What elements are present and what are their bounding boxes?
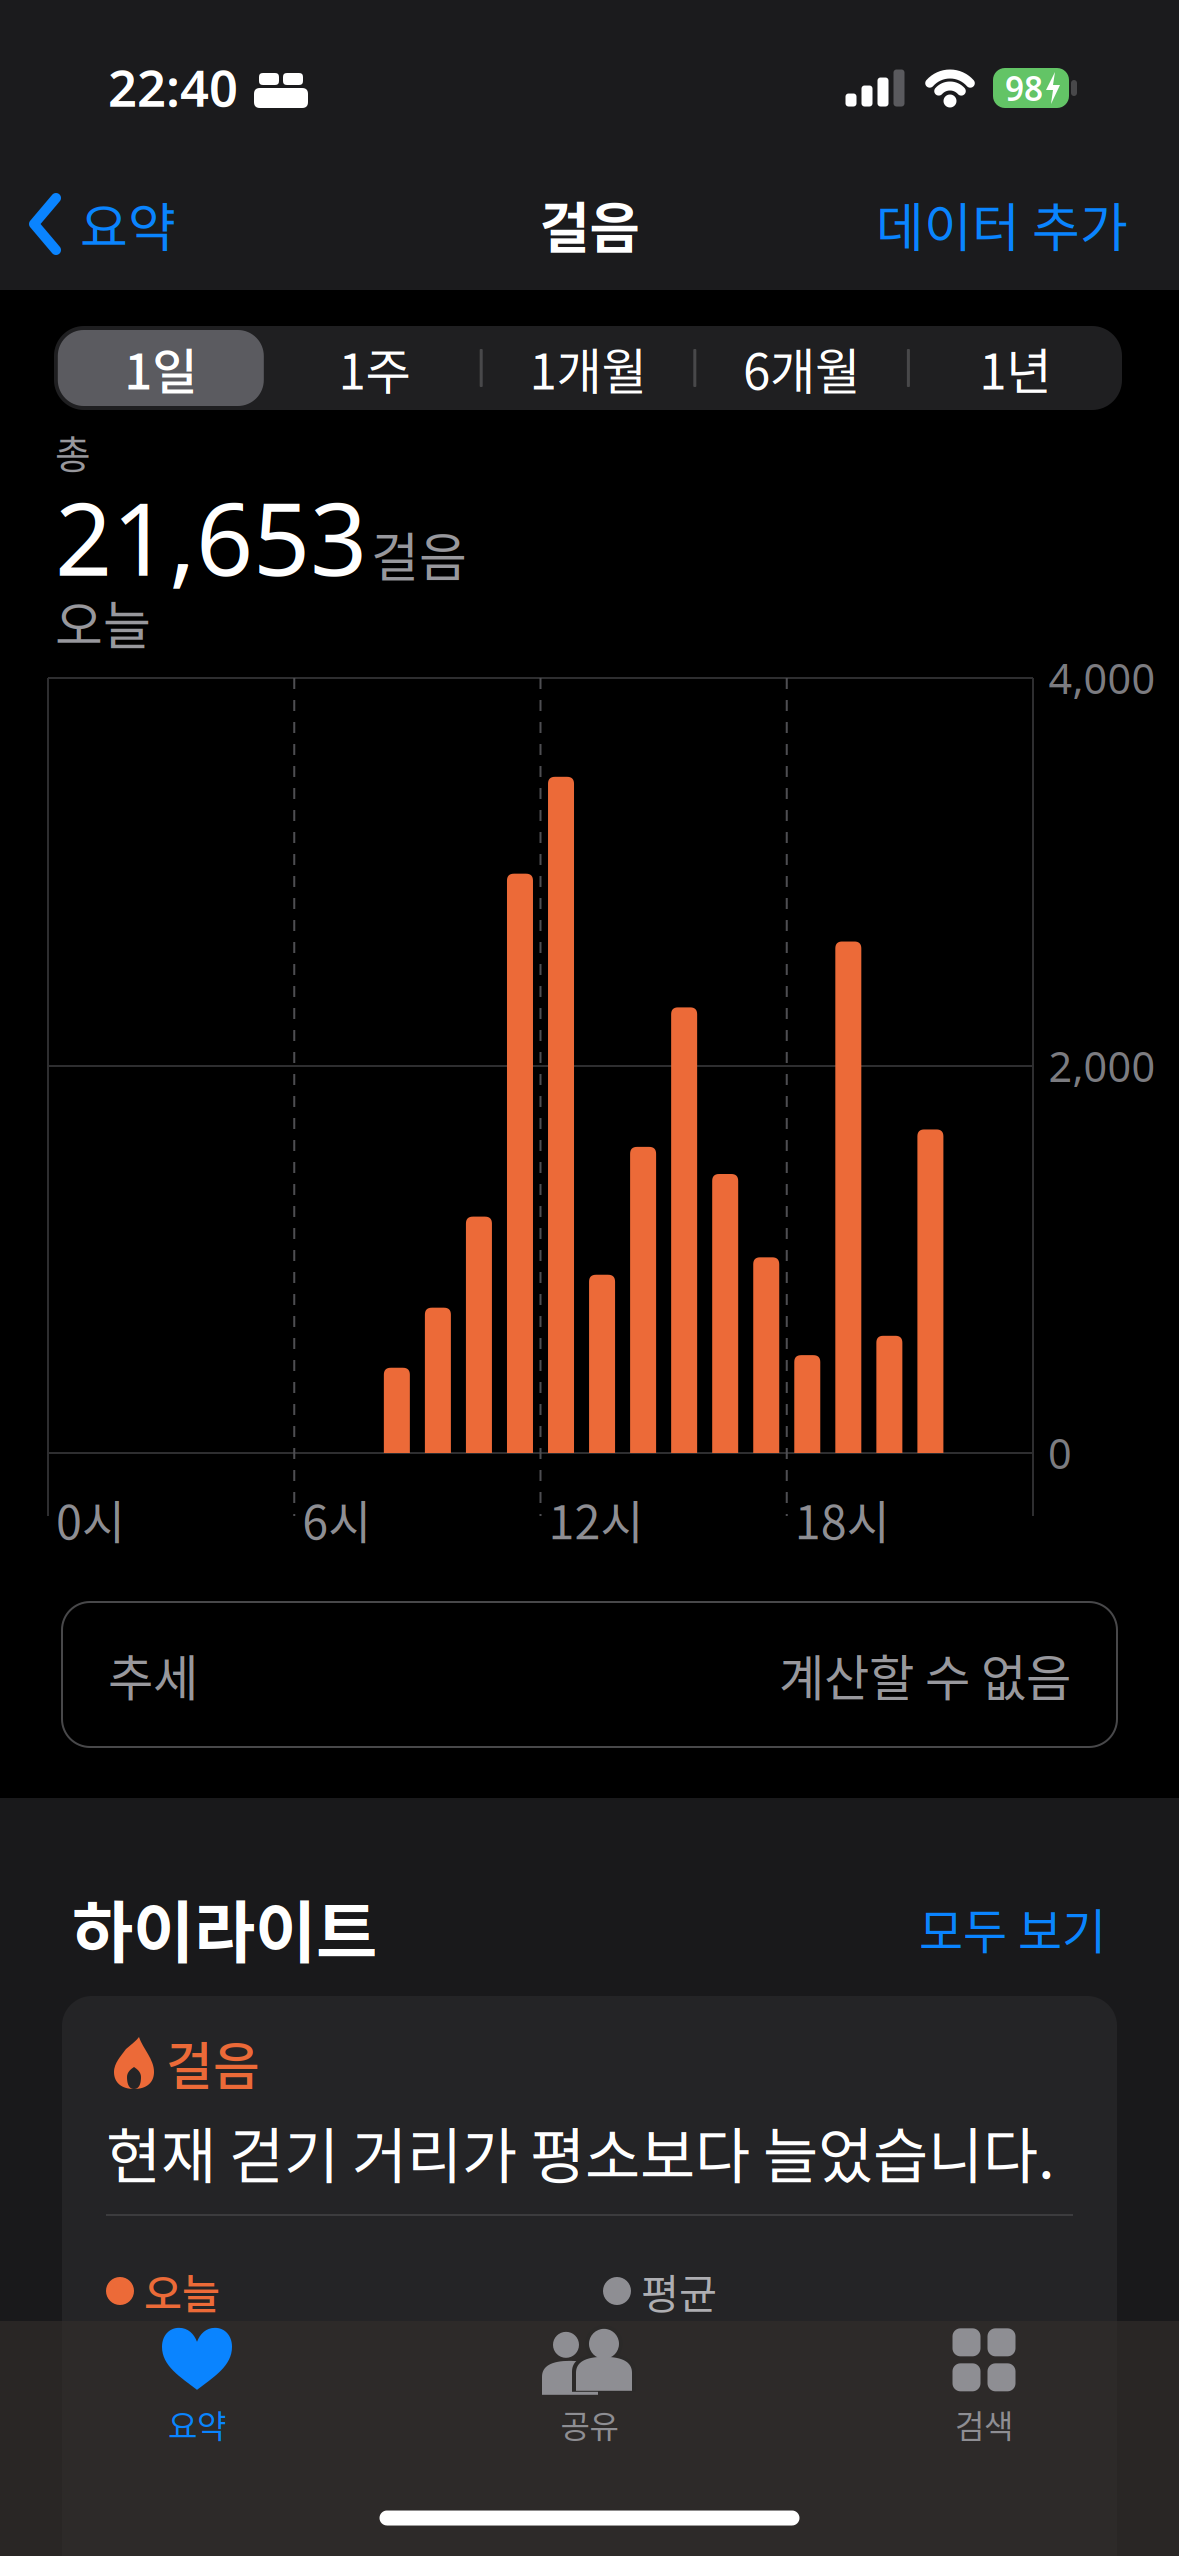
staticText: 1년 — [979, 332, 1051, 404]
staticText: 12시 — [548, 1485, 643, 1553]
staticText: 걸음 — [371, 516, 467, 591]
staticText: 계산할 수 없음 — [779, 1639, 1071, 1710]
staticText: 18시 — [795, 1485, 890, 1553]
staticText: 6시 — [302, 1485, 371, 1553]
staticText: 오늘 — [55, 584, 151, 660]
staticText: 공유 — [560, 2401, 618, 2447]
button[interactable]: 1년 — [908, 326, 1122, 410]
button[interactable]: 1개월 — [481, 326, 695, 410]
staticText: 요약 — [168, 2401, 226, 2447]
button[interactable]: 6개월 — [695, 326, 908, 410]
staticText: 평균 — [641, 2261, 717, 2321]
button[interactable]: 걸음 — [62, 1996, 1117, 2556]
staticText: 총 — [55, 424, 91, 480]
staticText: 98 — [1005, 66, 1043, 110]
button[interactable]: 1일 — [54, 326, 268, 410]
button[interactable]: 공유 — [469, 2322, 709, 2452]
button[interactable]: 뒤로 — [30, 186, 176, 262]
button[interactable]: 추세 — [62, 1602, 1117, 1747]
staticText: 2,000 — [1048, 1039, 1155, 1093]
staticText: 21,653 — [55, 471, 367, 603]
staticText: 요약 — [80, 186, 176, 262]
staticText: 22:40 — [108, 53, 238, 121]
staticText: 1일 — [124, 332, 197, 404]
staticText: 추세 — [108, 1639, 198, 1710]
staticText: 4,000 — [1048, 651, 1155, 705]
button[interactable]: 1주 — [268, 326, 481, 410]
staticText: 오늘 — [144, 2261, 220, 2321]
staticText: 0시 — [56, 1485, 125, 1553]
staticText: 0 — [1048, 1426, 1072, 1480]
staticText: 1개월 — [529, 332, 646, 404]
button[interactable]: 요약 — [77, 2322, 317, 2452]
staticText: 걸음 — [166, 2026, 260, 2100]
staticText: 모두 보기 — [919, 1893, 1106, 1963]
button[interactable]: 검색 — [864, 2322, 1104, 2452]
staticText: 데이터 추가 — [876, 186, 1128, 262]
staticText: 하이라이트 — [72, 1880, 377, 1976]
staticText: 6개월 — [743, 332, 860, 404]
staticText: 1주 — [338, 332, 410, 404]
staticText: 검색 — [955, 2401, 1013, 2447]
button[interactable]: 모두 보기 — [919, 1893, 1106, 1963]
staticText: 현재 걷기 거리가 평소보다 늘었습니다. — [106, 2109, 1055, 2195]
button[interactable]: 데이터 추가 — [876, 186, 1128, 262]
staticText: 걸음 — [539, 184, 639, 264]
